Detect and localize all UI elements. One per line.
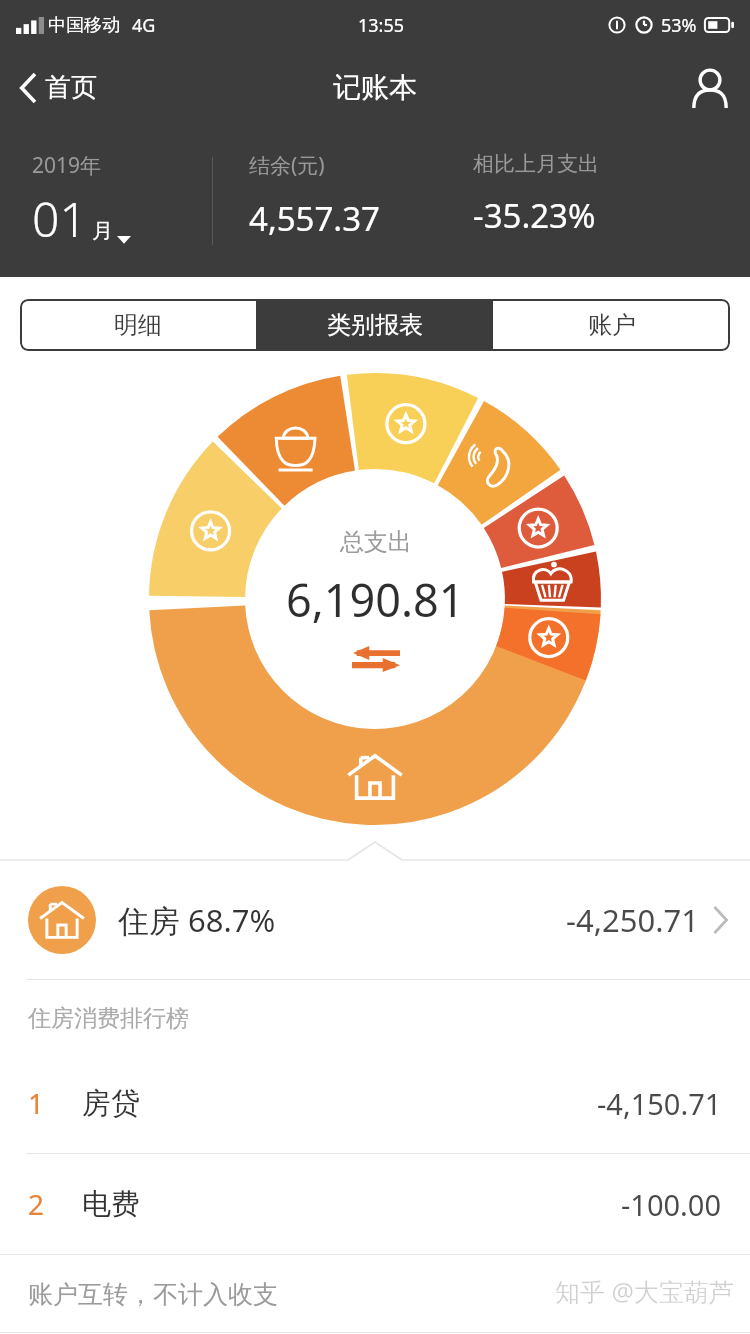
staticText: 4G bbox=[132, 13, 156, 38]
staticText: 记账本 bbox=[333, 70, 417, 105]
staticText: 知乎 @大宝葫芦 bbox=[555, 1274, 734, 1308]
staticText: 首页 bbox=[45, 71, 97, 104]
staticText: -4,150.71 bbox=[597, 1084, 722, 1123]
staticText: 账户 bbox=[588, 310, 636, 340]
staticText: 结余(元) bbox=[249, 151, 325, 180]
button[interactable]: 账户 bbox=[493, 299, 730, 351]
button[interactable]: 首页 bbox=[0, 61, 113, 114]
staticText: 类别报表 bbox=[327, 310, 423, 340]
button[interactable]: 1 bbox=[0, 1053, 750, 1153]
staticText: 月 bbox=[92, 218, 113, 244]
staticText: 总支出 bbox=[340, 527, 412, 557]
staticText: 住房消费排行榜 bbox=[28, 1004, 189, 1033]
staticText: 房贷 bbox=[82, 1085, 140, 1122]
button[interactable]: 住房 68.7% bbox=[0, 861, 750, 979]
button[interactable]: Profile bbox=[670, 56, 750, 120]
staticText: 13:55 bbox=[358, 13, 405, 38]
staticText: 53% bbox=[661, 13, 697, 38]
staticText: 6,190.81 bbox=[286, 569, 465, 630]
staticText: 明细 bbox=[114, 310, 162, 340]
staticText: 01 bbox=[32, 186, 87, 251]
staticText: 1 bbox=[28, 1084, 45, 1122]
staticText: 相比上月支出 bbox=[473, 151, 599, 177]
staticText: 住房 68.7% bbox=[118, 899, 276, 941]
staticText: 2 bbox=[28, 1185, 45, 1223]
staticText: 4,557.37 bbox=[249, 196, 380, 241]
staticText: -100.00 bbox=[621, 1185, 722, 1224]
staticText: 电费 bbox=[82, 1186, 140, 1223]
button[interactable]: 2019年 bbox=[0, 125, 212, 277]
staticText: 账户互转，不计入收支 bbox=[28, 1279, 278, 1310]
button[interactable]: 类别报表 bbox=[256, 299, 493, 351]
staticText: -4,250.71 bbox=[566, 899, 699, 941]
staticText: 2019年 bbox=[32, 151, 102, 180]
staticText: 中国移动 bbox=[48, 14, 120, 37]
button[interactable]: 明细 bbox=[20, 299, 256, 351]
button[interactable]: 2 bbox=[0, 1154, 750, 1254]
staticText: -35.23% bbox=[473, 193, 596, 238]
